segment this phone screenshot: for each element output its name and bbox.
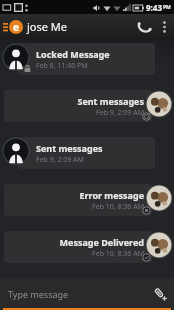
staticText: Error message	[79, 189, 144, 201]
button[interactable]: Attach	[146, 278, 174, 310]
staticText: Feb 9, 2:09 AM	[96, 108, 144, 118]
button[interactable]: Error message	[0, 184, 174, 220]
staticText: Feb 9, 2:09 AM	[36, 155, 84, 165]
staticText: PM	[163, 4, 171, 11]
button[interactable]: More options	[156, 14, 172, 39]
staticText: e	[13, 20, 19, 34]
button[interactable]: Call	[132, 14, 156, 39]
staticText: jose Me	[27, 19, 132, 34]
staticText: Feb 8, 11:40 PM	[36, 61, 88, 71]
button[interactable]: Sent messages	[0, 137, 174, 173]
staticText: 9:43	[146, 2, 162, 13]
staticText: Feb 10, 8:36 AM	[92, 202, 144, 212]
button[interactable]: Type message	[8, 278, 142, 310]
button[interactable]: Navigate up	[2, 14, 24, 39]
staticText: Locked Message	[36, 48, 110, 60]
button[interactable]: Locked Message	[0, 43, 174, 79]
staticText: Message Delivered	[59, 236, 144, 248]
button[interactable]: Sent messages	[0, 90, 174, 126]
button[interactable]: Message Delivered	[0, 231, 174, 267]
staticText: Sent messages	[36, 142, 103, 154]
staticText: Type message	[8, 288, 69, 300]
staticText: Feb 10, 8:36 AM	[92, 249, 144, 259]
staticText: Sent messages	[77, 95, 144, 107]
